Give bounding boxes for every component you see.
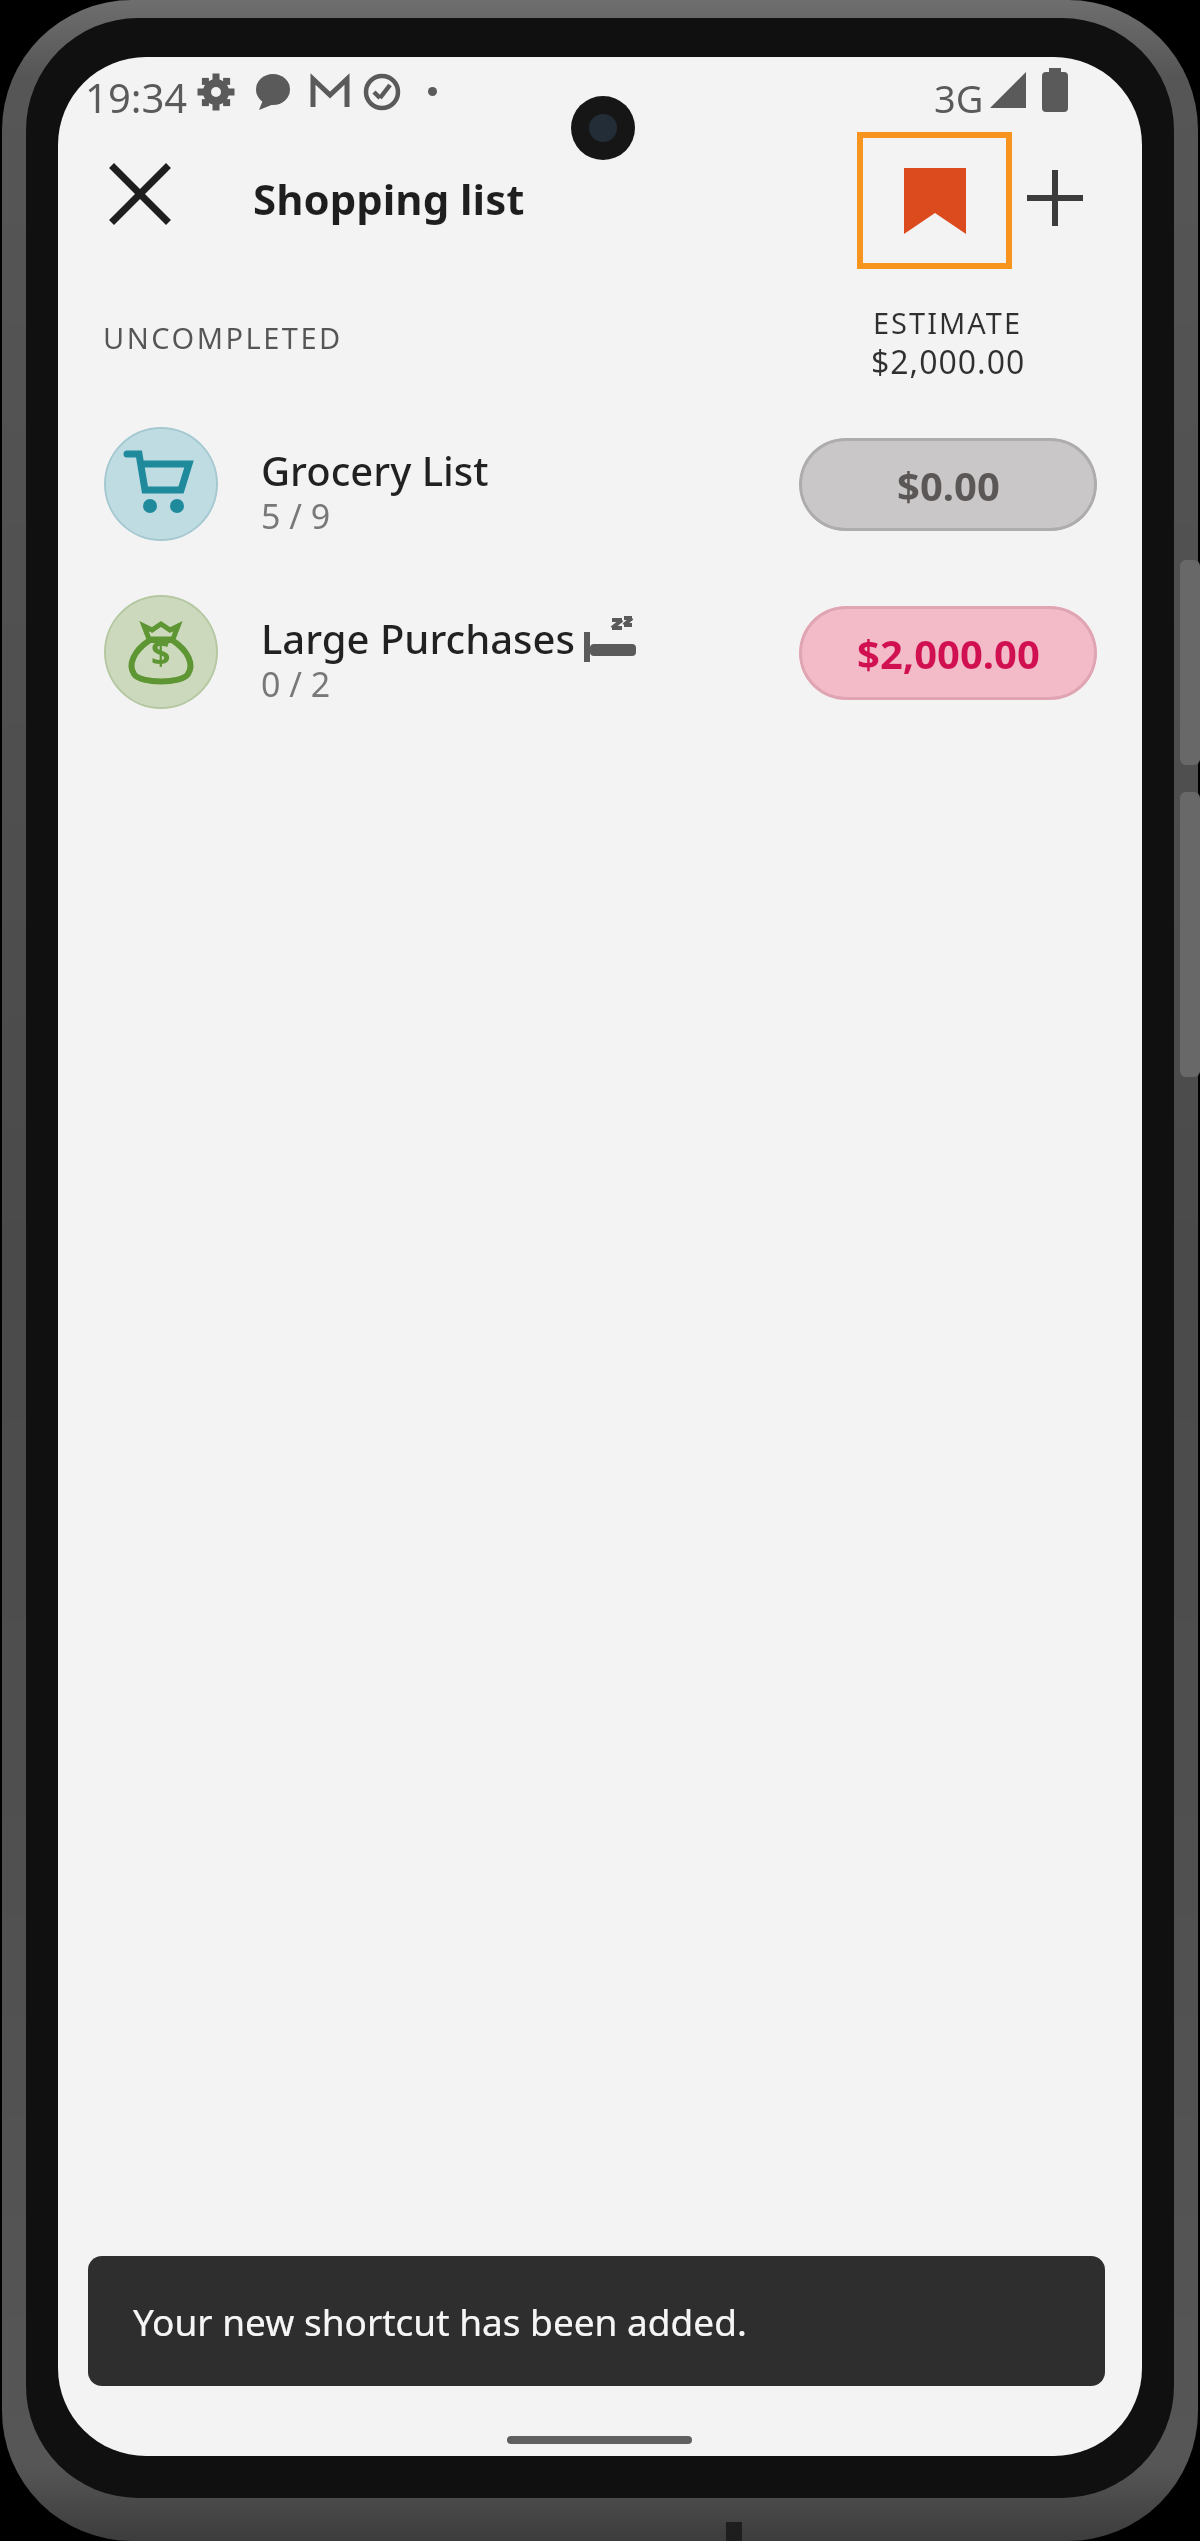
button[interactable]: $2,000.00 (799, 606, 1097, 700)
staticText: Your new shortcut has been added. (133, 2296, 747, 2346)
staticText: 3G (934, 72, 984, 124)
staticText: $ (151, 629, 171, 675)
staticText: Grocery List (261, 443, 489, 497)
staticText: $0.00 (897, 458, 1000, 512)
staticText: $2,000.00 (857, 626, 1040, 680)
staticText: 19:34 (85, 70, 188, 124)
staticText: UNCOMPLETED (103, 318, 343, 357)
button[interactable] (1019, 162, 1091, 234)
button[interactable] (88, 420, 1118, 550)
button[interactable]: $0.00 (799, 438, 1097, 531)
button[interactable] (88, 588, 1118, 718)
staticText: 0 / 2 (261, 661, 331, 707)
staticText: 5 / 9 (261, 493, 331, 539)
staticText: $2,000.00 (871, 340, 1026, 384)
button[interactable] (857, 132, 1012, 269)
staticText: Shopping list (253, 170, 525, 227)
staticText: ESTIMATE (873, 303, 1023, 342)
staticText: Large Purchases (261, 611, 575, 665)
button[interactable] (104, 158, 176, 230)
